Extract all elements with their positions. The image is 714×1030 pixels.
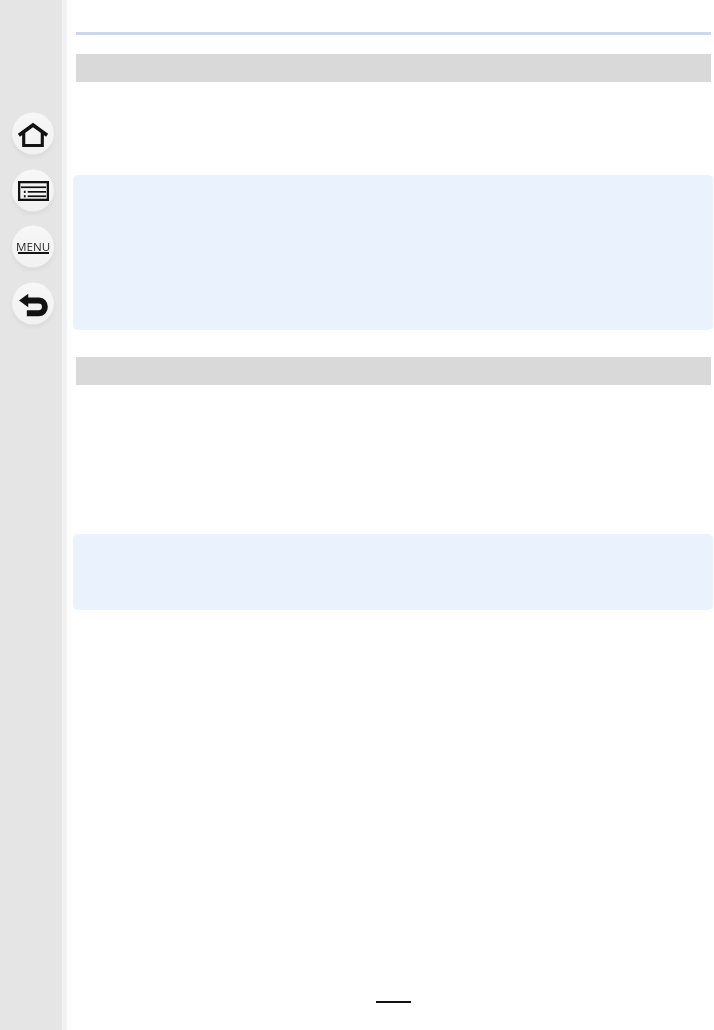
button[interactable]: Menu [9,223,57,271]
button[interactable]: Table of contents [9,167,57,215]
staticText: MENU [16,239,51,255]
button[interactable]: Back [9,280,57,328]
button[interactable]: Home [9,110,57,158]
